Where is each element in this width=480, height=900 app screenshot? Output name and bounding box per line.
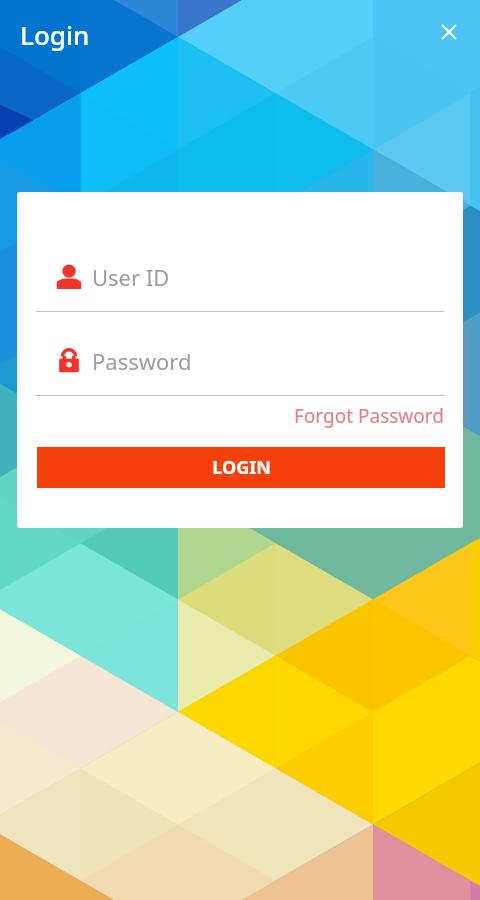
button[interactable]: Password	[36, 338, 444, 396]
button[interactable]: LOGIN	[37, 447, 445, 488]
staticText: Login	[20, 17, 90, 52]
staticText: Password	[92, 346, 192, 376]
staticText: User ID	[92, 262, 170, 292]
button[interactable]: User ID	[36, 254, 444, 312]
button[interactable]: Close	[433, 16, 464, 47]
button[interactable]: Forgot Password	[294, 403, 444, 429]
staticText: LOGIN	[212, 455, 271, 480]
